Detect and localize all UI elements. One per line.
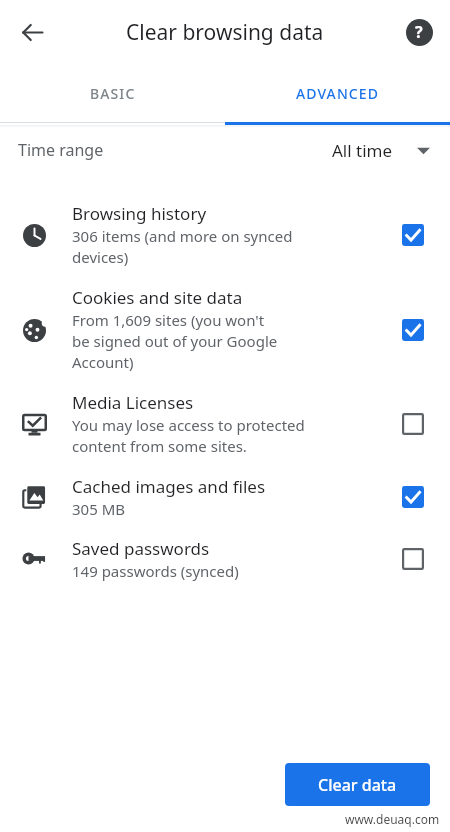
button[interactable]: Time range <box>0 127 450 173</box>
button[interactable]: Cookies and site data <box>0 277 450 382</box>
staticText: 149 passwords (synced) <box>72 561 239 581</box>
staticText: www.deuaq.com <box>345 811 440 827</box>
staticText: All time <box>332 139 393 162</box>
staticText: Time range <box>18 139 104 161</box>
staticText: ADVANCED <box>296 84 380 103</box>
button[interactable]: Back <box>12 12 52 52</box>
staticText: You may lose access to protected content… <box>72 415 305 457</box>
button[interactable]: Not selected <box>396 542 430 576</box>
button[interactable]: Browsing history <box>0 193 450 277</box>
button[interactable]: Saved passwords <box>0 528 450 590</box>
button[interactable]: Selected <box>396 480 430 514</box>
button[interactable]: Selected <box>396 313 430 347</box>
button[interactable]: Not selected <box>396 407 430 441</box>
staticText: Cookies and site data <box>72 286 243 309</box>
button[interactable]: Help <box>399 12 439 52</box>
button[interactable]: Media Licenses <box>0 382 450 466</box>
button[interactable]: ADVANCED <box>225 64 450 122</box>
staticText: Cached images and files <box>72 475 266 498</box>
staticText: Clear data <box>318 774 397 796</box>
staticText: From 1,609 sites (you won't be signed ou… <box>72 310 278 373</box>
staticText: Clear browsing data <box>126 18 324 47</box>
staticText: 306 items (and more on synced devices) <box>72 226 293 268</box>
button[interactable]: BASIC <box>0 64 225 122</box>
staticText: BASIC <box>90 84 136 103</box>
button[interactable]: Clear data <box>285 763 430 806</box>
staticText: ? <box>415 21 423 43</box>
button[interactable]: Selected <box>396 218 430 252</box>
staticText: Media Licenses <box>72 391 194 414</box>
staticText: Saved passwords <box>72 537 210 560</box>
staticText: 305 MB <box>72 499 125 519</box>
staticText: Browsing history <box>72 202 207 225</box>
button[interactable]: Cached images and files <box>0 466 450 528</box>
